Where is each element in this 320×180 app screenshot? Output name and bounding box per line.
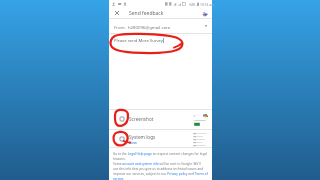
- button[interactable]: Send: [200, 9, 209, 18]
- button[interactable]: Please send More Survey: [109, 34, 212, 50]
- staticText: Go to the Legal Help page to request con…: [113, 152, 208, 180]
- staticText: Send feedback: [129, 10, 164, 17]
- button[interactable]: From: h280096@gmail.com: [109, 19, 212, 33]
- staticText: 10:14 am: [200, 2, 215, 6]
- button[interactable]: Close: [112, 8, 122, 18]
- button[interactable]: System logs: [109, 130, 212, 148]
- staticText: Please send More Survey: [114, 38, 163, 44]
- staticText: View: [129, 140, 137, 145]
- staticText: 34%: [189, 2, 196, 6]
- staticText: System logs: [129, 134, 156, 140]
- button[interactable]: Screenshot: [109, 110, 212, 128]
- staticText: Screenshot: [129, 116, 154, 122]
- staticText: From: h280096@gmail.com: [114, 24, 171, 30]
